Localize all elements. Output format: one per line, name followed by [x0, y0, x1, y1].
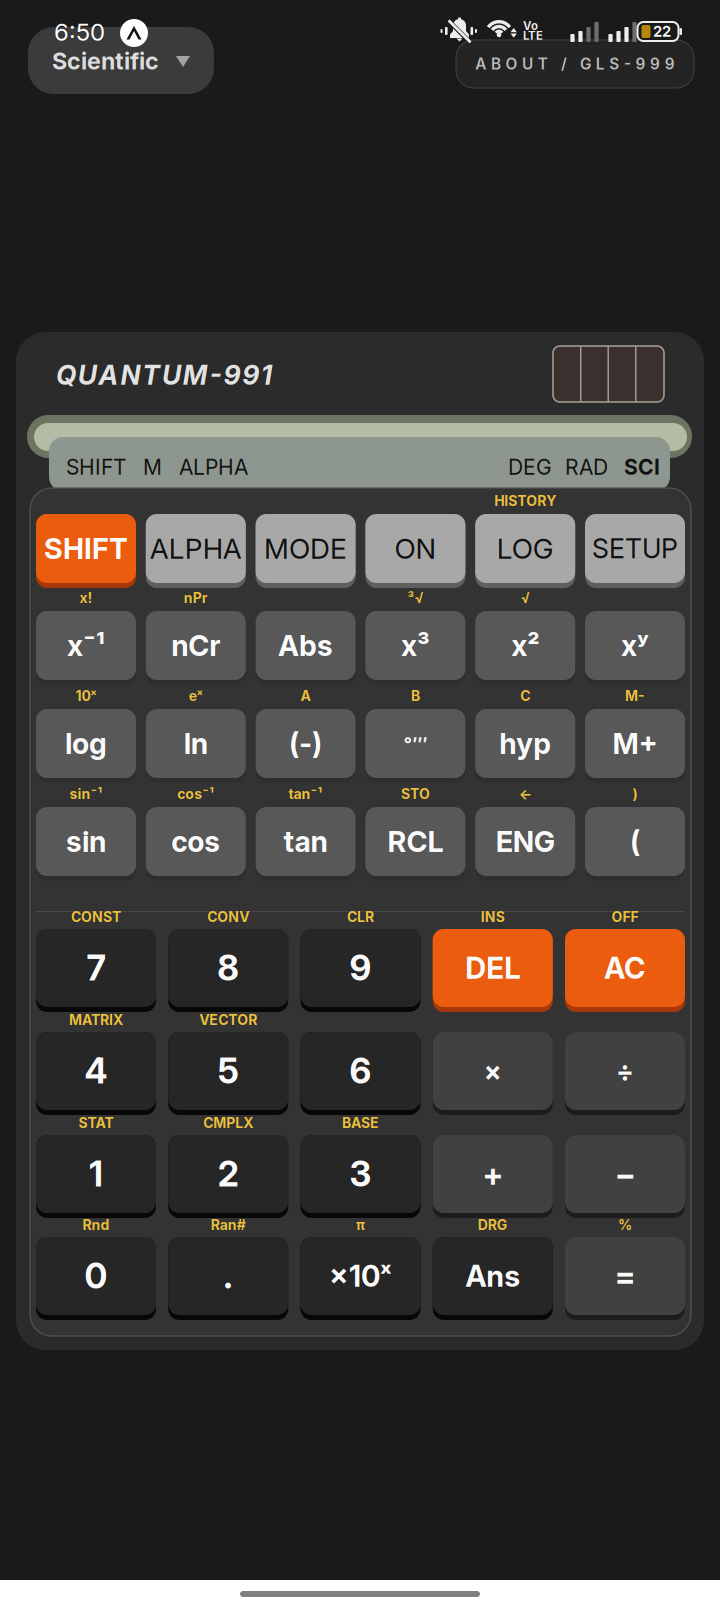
staticText: cos [171, 824, 220, 859]
staticText: HISTORY [494, 492, 556, 509]
staticText: × [484, 1055, 502, 1087]
button[interactable]: 2 [168, 1135, 288, 1218]
staticText: nCr [171, 628, 220, 663]
staticText: 0 [84, 1255, 107, 1297]
button[interactable]: SHIFT [36, 514, 136, 588]
button[interactable]: ALPHA [146, 514, 246, 588]
button[interactable]: SETUP [585, 514, 685, 588]
staticText: hyp [499, 726, 551, 761]
button[interactable]: ( [585, 807, 685, 881]
staticText: √ [521, 589, 530, 606]
staticText: 1 [89, 1153, 103, 1195]
staticText: tan⁻¹ [289, 785, 323, 802]
staticText: M+ [612, 726, 657, 761]
button[interactable]: x⁻¹ [36, 611, 136, 685]
button[interactable]: DEL [433, 929, 553, 1012]
staticText: DEL [465, 950, 520, 986]
button[interactable]: Abs [256, 611, 356, 685]
staticText: 2 [218, 1153, 239, 1195]
staticText: π [356, 1216, 365, 1233]
button[interactable]: °′″ [365, 709, 465, 783]
button[interactable]: LOG [475, 514, 575, 588]
staticText: STO [401, 785, 430, 802]
staticText: cos⁻¹ [177, 785, 214, 802]
button[interactable]: MODE [256, 514, 356, 588]
staticText: 6:50 [54, 17, 105, 46]
staticText: CONST [71, 908, 121, 925]
staticText: (-) [289, 726, 322, 761]
button[interactable]: 6 [300, 1032, 420, 1115]
staticText: LTE [523, 29, 543, 42]
button[interactable]: 7 [36, 929, 156, 1012]
staticText: Ans [465, 1258, 520, 1294]
staticText: log [65, 726, 107, 761]
staticText: SETUP [592, 532, 678, 565]
button[interactable]: M+ [585, 709, 685, 783]
staticText: ALPHA [150, 532, 242, 565]
button[interactable]: 3 [300, 1135, 420, 1218]
button[interactable]: 9 [300, 929, 420, 1012]
button[interactable]: ×10ˣ [300, 1237, 420, 1320]
staticText: 4 [84, 1050, 107, 1092]
staticText: 3 [349, 1153, 371, 1195]
staticText: ) [632, 785, 637, 802]
staticText: INS [481, 908, 505, 925]
button[interactable]: cos [146, 807, 246, 881]
button[interactable]: (-) [256, 709, 356, 783]
button[interactable]: 5 [168, 1032, 288, 1115]
staticText: . [223, 1255, 233, 1297]
staticText: x³ [401, 628, 430, 663]
staticText: Vo [523, 19, 538, 33]
button[interactable]: tan [256, 807, 356, 881]
button[interactable]: ON [365, 514, 465, 588]
button[interactable]: − [565, 1135, 685, 1218]
button[interactable]: × [433, 1032, 553, 1115]
staticText: SCI [624, 454, 660, 480]
staticText: LOG [497, 532, 554, 565]
button[interactable]: x² [475, 611, 575, 685]
button[interactable]: ABOUT / GLS-999 [456, 40, 694, 88]
staticText: eˣ [189, 687, 203, 704]
staticText: ³√ [407, 589, 423, 606]
staticText: 9 [349, 947, 371, 989]
button[interactable]: 4 [36, 1032, 156, 1115]
button[interactable]: Scientific [28, 27, 214, 94]
staticText: sin⁻¹ [69, 785, 102, 802]
button[interactable]: nCr [146, 611, 246, 685]
staticText: 8 [217, 947, 239, 989]
button[interactable]: Ans [433, 1237, 553, 1320]
button[interactable]: 1 [36, 1135, 156, 1218]
staticText: x! [79, 589, 92, 606]
button[interactable]: 8 [168, 929, 288, 1012]
staticText: SHIFT [66, 454, 127, 480]
button[interactable]: ENG [475, 807, 575, 881]
button[interactable]: sin [36, 807, 136, 881]
staticText: sin [66, 824, 106, 859]
staticText: ( [630, 824, 640, 859]
button[interactable]: ÷ [565, 1032, 685, 1115]
button[interactable]: AC [565, 929, 685, 1012]
button[interactable]: . [168, 1237, 288, 1320]
staticText: ← [519, 785, 532, 802]
button[interactable]: + [433, 1135, 553, 1218]
staticText: 10ˣ [75, 687, 96, 704]
staticText: M [143, 454, 162, 480]
button[interactable]: hyp [475, 709, 575, 783]
staticText: Scientific [52, 47, 159, 75]
staticText: 22 [653, 23, 671, 40]
staticText: ABOUT / GLS-999 [475, 55, 675, 73]
button[interactable]: = [565, 1237, 685, 1320]
staticText: ALPHA [179, 454, 248, 480]
staticText: M- [625, 687, 645, 704]
button[interactable]: RCL [365, 807, 465, 881]
button[interactable]: 0 [36, 1237, 156, 1320]
button[interactable]: log [36, 709, 136, 783]
staticText: QUANTUM-991 [56, 359, 272, 391]
staticText: ON [394, 532, 436, 565]
staticText: tan [284, 824, 328, 859]
staticText: SHIFT [44, 531, 128, 566]
button[interactable]: ln [146, 709, 246, 783]
button[interactable]: xʸ [585, 611, 685, 685]
staticText: CONV [207, 908, 249, 925]
button[interactable]: x³ [365, 611, 465, 685]
